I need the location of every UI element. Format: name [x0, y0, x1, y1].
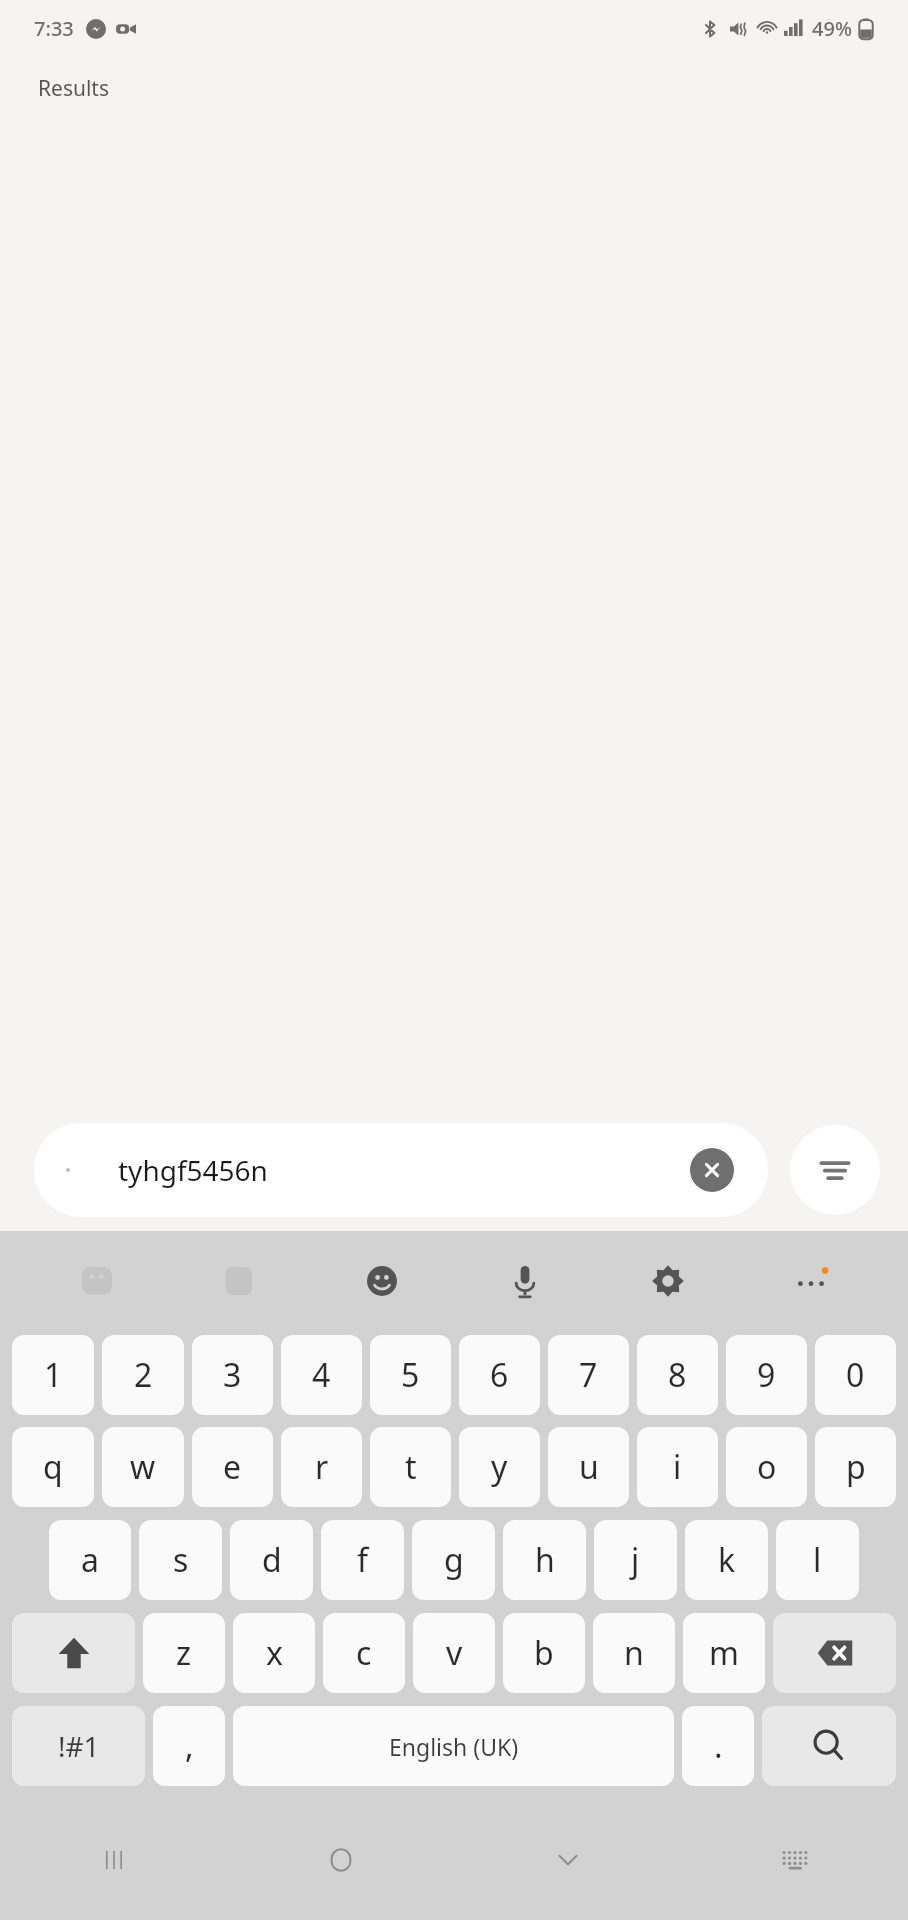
button[interactable]: x	[233, 1613, 315, 1693]
staticText: 0	[846, 1353, 865, 1397]
button[interactable]: p	[815, 1427, 896, 1507]
button[interactable]: Change keyboard	[681, 1800, 908, 1920]
staticText: g	[444, 1538, 464, 1582]
staticText: 1	[44, 1353, 63, 1397]
button[interactable]: k	[685, 1520, 768, 1600]
button[interactable]: l	[776, 1520, 859, 1600]
staticText: English (UK)	[389, 1731, 519, 1762]
staticText: w	[130, 1445, 156, 1489]
button[interactable]: v	[413, 1613, 495, 1693]
staticText: f	[357, 1538, 369, 1582]
button[interactable]: o	[726, 1427, 807, 1507]
staticText: x	[266, 1631, 283, 1675]
button[interactable]: Voice input	[453, 1231, 596, 1331]
button[interactable]: b	[503, 1613, 585, 1693]
staticText: 8	[668, 1353, 687, 1397]
staticText: o	[757, 1445, 777, 1489]
staticText: c	[356, 1631, 372, 1675]
staticText: Results	[38, 74, 110, 103]
staticText: 9	[757, 1353, 776, 1397]
staticText: 7:33	[34, 15, 74, 42]
button[interactable]: Recents	[0, 1800, 227, 1920]
button[interactable]: Clear text	[690, 1148, 734, 1192]
button[interactable]: !#1	[12, 1706, 145, 1786]
button[interactable]: c	[323, 1613, 405, 1693]
button[interactable]: 8	[637, 1335, 718, 1415]
button[interactable]: n	[593, 1613, 675, 1693]
button[interactable]: g	[412, 1520, 495, 1600]
button[interactable]: y	[459, 1427, 540, 1507]
staticText: j	[631, 1538, 640, 1582]
button[interactable]: t	[370, 1427, 451, 1507]
staticText: r	[315, 1445, 329, 1489]
button[interactable]: a	[49, 1520, 131, 1600]
staticText: a	[81, 1538, 99, 1582]
button[interactable]: Settings	[596, 1231, 739, 1331]
button[interactable]: r	[281, 1427, 362, 1507]
button[interactable]: 9	[726, 1335, 807, 1415]
button[interactable]: 4	[281, 1335, 362, 1415]
button[interactable]: Shift	[12, 1613, 135, 1693]
button[interactable]: d	[230, 1520, 313, 1600]
staticText: d	[262, 1538, 282, 1582]
staticText: 2	[134, 1353, 153, 1397]
staticText: m	[709, 1631, 739, 1675]
button[interactable]: 6	[459, 1335, 540, 1415]
staticText: tyhgf5456n	[118, 1151, 268, 1189]
button[interactable]: 1	[12, 1335, 94, 1415]
staticText: ,	[185, 1724, 194, 1768]
staticText: h	[535, 1538, 555, 1582]
staticText: 49%	[812, 15, 852, 42]
button[interactable]: 7	[548, 1335, 629, 1415]
button[interactable]: 3	[192, 1335, 273, 1415]
staticText: 4	[312, 1353, 331, 1397]
button[interactable]: English (UK)	[233, 1706, 674, 1786]
button[interactable]: Filter	[790, 1125, 880, 1215]
staticText: i	[673, 1445, 682, 1489]
staticText: 3	[223, 1353, 242, 1397]
button[interactable]: m	[683, 1613, 765, 1693]
button[interactable]: Search	[762, 1706, 896, 1786]
button[interactable]: h	[503, 1520, 586, 1600]
button[interactable]: Home	[227, 1800, 454, 1920]
button[interactable]: .	[682, 1706, 754, 1786]
button[interactable]: tyhgf5456n	[34, 1123, 768, 1217]
button[interactable]: More options	[739, 1231, 882, 1331]
staticText: .	[714, 1724, 723, 1768]
button[interactable]: u	[548, 1427, 629, 1507]
button[interactable]: s	[139, 1520, 222, 1600]
button[interactable]: 5	[370, 1335, 451, 1415]
staticText: s	[173, 1538, 189, 1582]
staticText: p	[846, 1445, 866, 1489]
staticText: k	[718, 1538, 736, 1582]
staticText: e	[223, 1445, 242, 1489]
staticText: v	[446, 1631, 463, 1675]
button[interactable]: j	[594, 1520, 677, 1600]
button[interactable]: Backspace	[773, 1613, 896, 1693]
button[interactable]: 0	[815, 1335, 896, 1415]
staticText: t	[405, 1445, 417, 1489]
staticText: !#1	[58, 1727, 100, 1765]
staticText: z	[176, 1631, 192, 1675]
staticText: b	[534, 1631, 554, 1675]
staticText: 5	[401, 1353, 420, 1397]
staticText: u	[579, 1445, 599, 1489]
staticText: l	[813, 1538, 822, 1582]
button[interactable]: z	[143, 1613, 225, 1693]
button[interactable]: 2	[102, 1335, 184, 1415]
staticText: 6	[490, 1353, 509, 1397]
button[interactable]: i	[637, 1427, 718, 1507]
button[interactable]: e	[192, 1427, 273, 1507]
staticText: 7	[579, 1353, 598, 1397]
button[interactable]: w	[102, 1427, 184, 1507]
staticText: n	[624, 1631, 644, 1675]
button[interactable]: Stickers	[26, 1231, 168, 1331]
staticText: q	[43, 1445, 63, 1489]
button[interactable]: q	[12, 1427, 94, 1507]
button[interactable]: ,	[153, 1706, 225, 1786]
button[interactable]: Emoji	[310, 1231, 453, 1331]
button[interactable]: f	[321, 1520, 404, 1600]
staticText: y	[491, 1445, 508, 1489]
